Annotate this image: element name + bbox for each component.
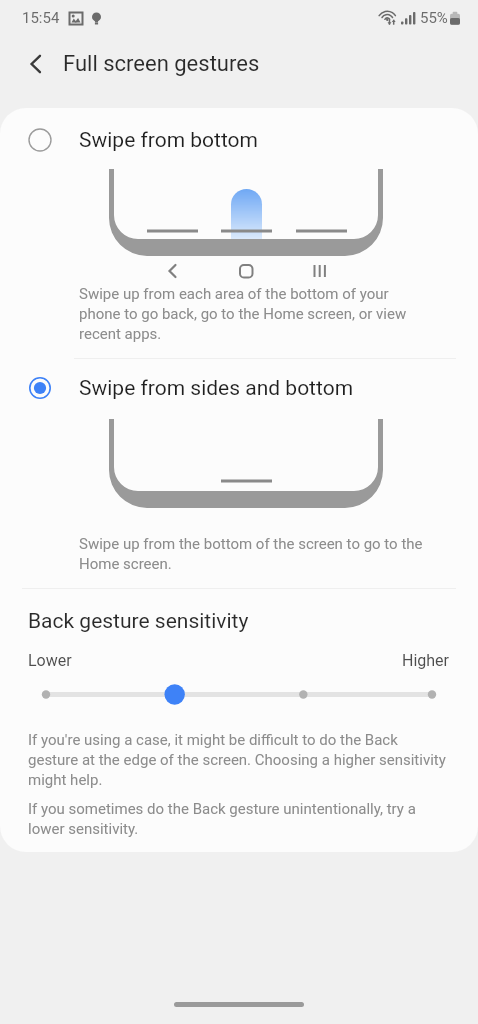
button[interactable]: Back gesture sensitivity: [0, 679, 478, 707]
button[interactable]: Swipe from bottom: [0, 117, 478, 163]
staticText: Swipe up from each area of the bottom of…: [79, 285, 417, 342]
staticText: Swipe up from the bottom of the screen t…: [79, 535, 429, 572]
staticText: 15:54: [22, 9, 60, 27]
staticText: If you're using a case, it might be diff…: [28, 731, 447, 788]
staticText: Higher: [402, 651, 450, 670]
staticText: 55%: [420, 9, 448, 27]
button[interactable]: Swipe from sides and bottom: [0, 365, 478, 411]
staticText: If you sometimes do the Back gesture uni…: [28, 800, 448, 837]
staticText: Swipe from bottom: [79, 128, 259, 153]
button[interactable]: Navigate up: [14, 42, 58, 86]
staticText: Swipe from sides and bottom: [79, 376, 354, 401]
staticText: Lower: [28, 651, 72, 670]
staticText: Full screen gestures: [63, 51, 260, 77]
staticText: Back gesture sensitivity: [28, 609, 249, 634]
